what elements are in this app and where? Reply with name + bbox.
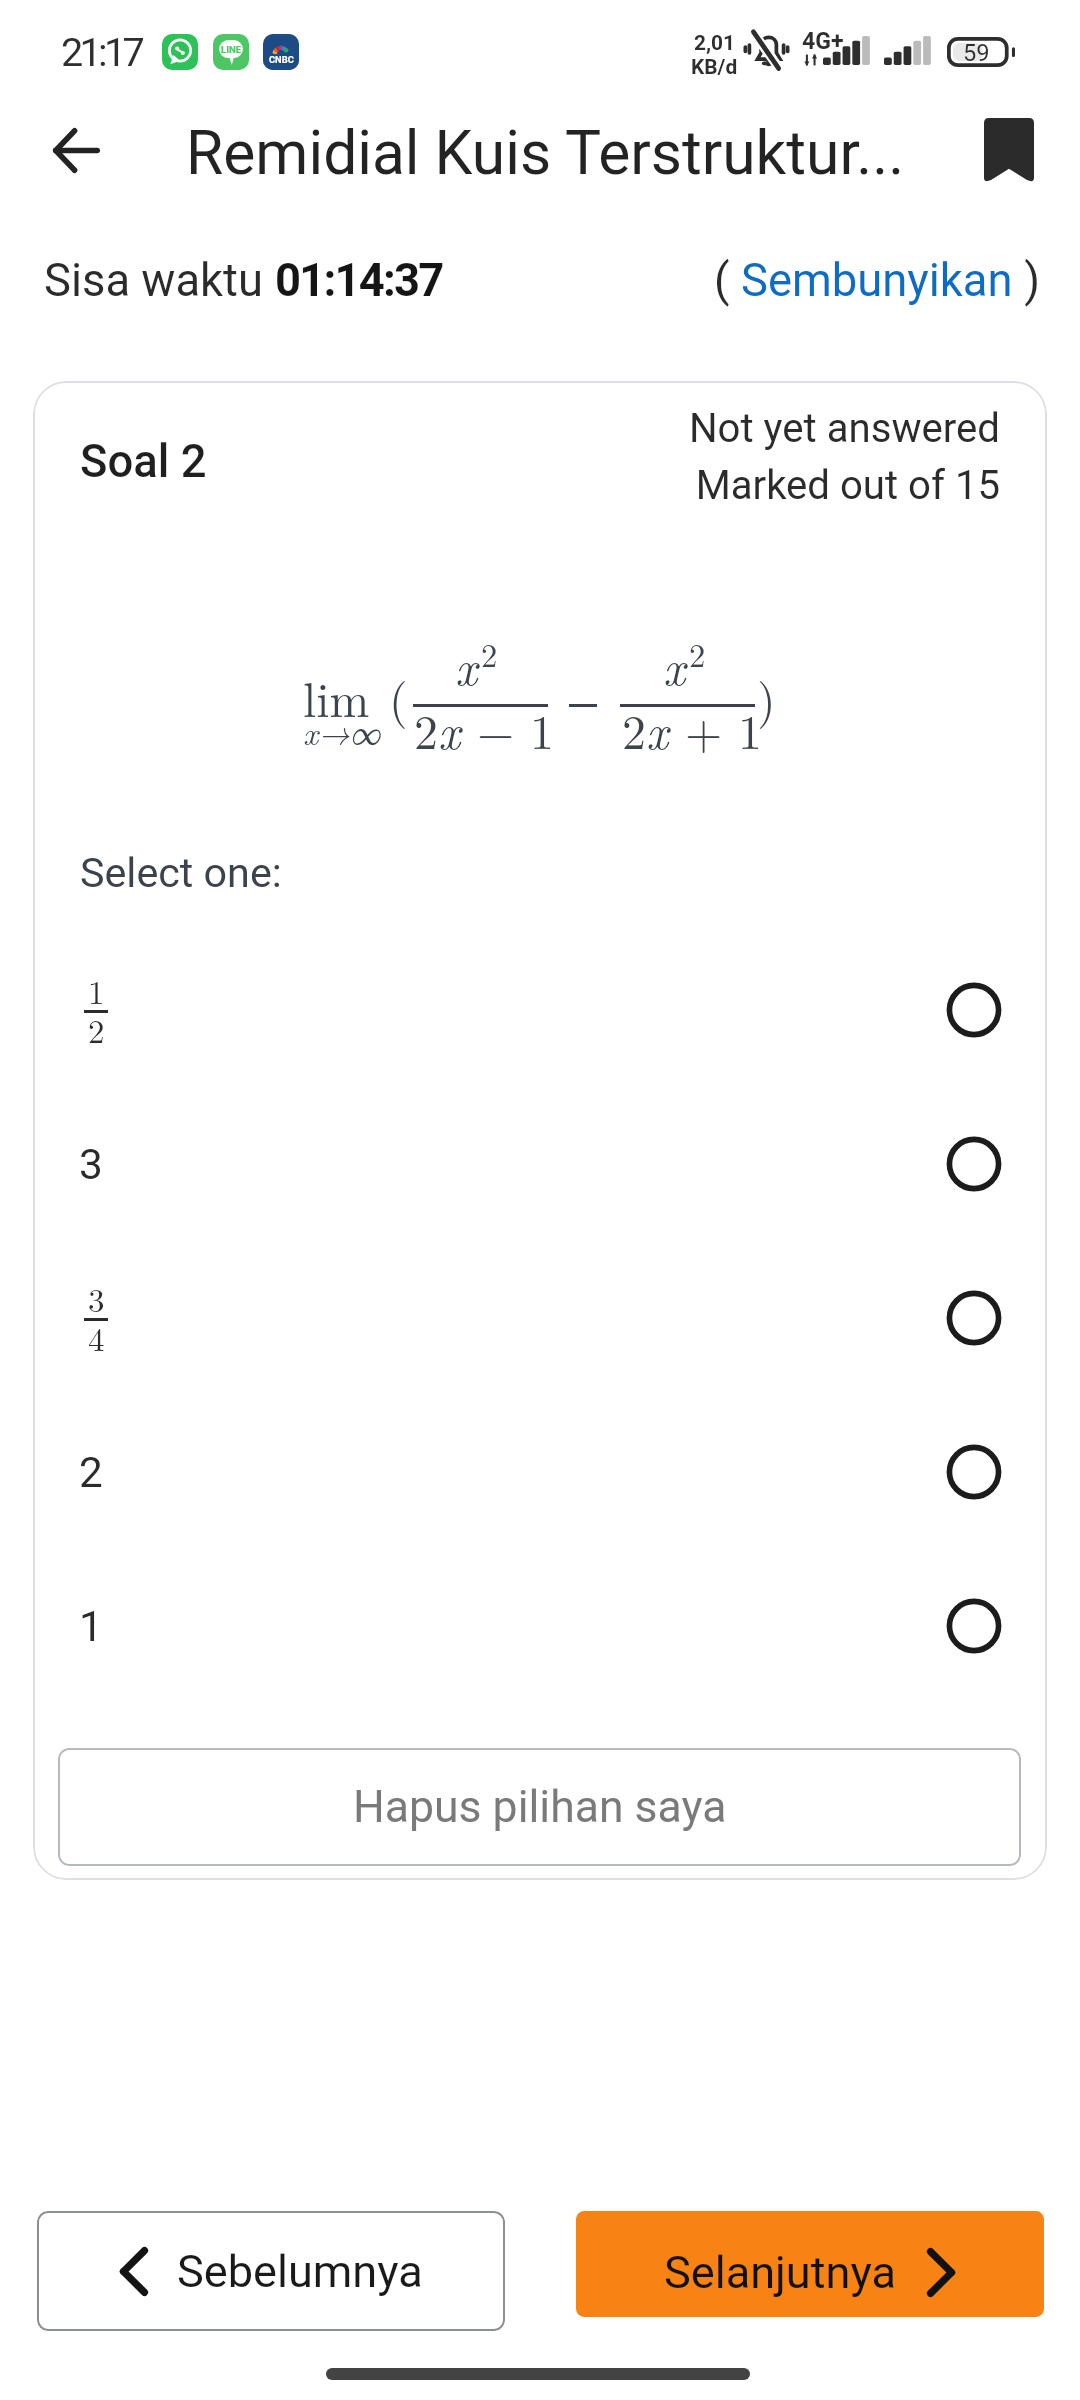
staticText: ( [389,663,408,731]
staticText: 1 [79,1602,103,1652]
staticText: 1 [88,967,105,1014]
staticText: x [455,631,478,699]
staticText: 2,01 [694,31,736,55]
staticText: 4 [88,1314,105,1361]
button[interactable]: Selanjutnya [576,2211,1044,2317]
button[interactable]: 3 [33,1241,1047,1395]
staticText: Sembunyikan [741,254,1013,307]
button[interactable]: 2 [33,1395,1047,1549]
staticText: x→∞ [303,708,381,754]
staticText: − 1 [461,695,555,763]
staticText: LINE [221,44,242,55]
button[interactable]: Hapus pilihan saya [58,1748,1021,1866]
staticText: ) [1013,254,1041,307]
staticText: x [663,631,686,699]
button[interactable]: Bookmark [965,105,1053,196]
staticText: 21:17 [61,29,142,75]
staticText: Soal 2 [80,435,207,488]
staticText: Remidial Kuis Terstruktur... [186,118,905,189]
staticText: 2 [414,695,438,763]
staticText: 01:14:37 [275,254,443,307]
button[interactable]: Back [40,114,112,186]
staticText: Sisa waktu [44,254,275,307]
staticText: 3 [88,1275,105,1322]
staticText: Not yet answered Marked out of 15 [688,405,1000,509]
button[interactable]: 1 [33,933,1047,1087]
staticText: + 1 [669,695,763,763]
staticText: Hapus pilihan saya [353,1781,727,1833]
staticText: CNBC [269,54,294,65]
staticText: Sebelumnya [177,2245,423,2298]
staticText: 4G+ [802,28,844,55]
button[interactable]: 3 [33,1087,1047,1241]
staticText: lim [303,663,370,731]
button[interactable]: Sebelumnya [37,2211,505,2331]
staticText: 2 [622,695,646,763]
staticText: Selanjutnya [664,2246,896,2299]
button[interactable]: ( [714,254,1041,307]
staticText: ) [757,663,776,731]
staticText: 2 [79,1448,103,1498]
staticText: KB/d [691,55,738,79]
staticText: 2 [88,1006,105,1053]
staticText: 2 [689,630,706,676]
staticText: Select one: [80,849,282,897]
staticText: 59 [963,39,990,67]
staticText: 3 [79,1140,103,1190]
staticText: 2 [481,630,498,676]
staticText: x [646,695,669,763]
staticText: ( [714,254,741,307]
staticText: x [438,695,461,763]
button[interactable]: 1 [33,1549,1047,1703]
